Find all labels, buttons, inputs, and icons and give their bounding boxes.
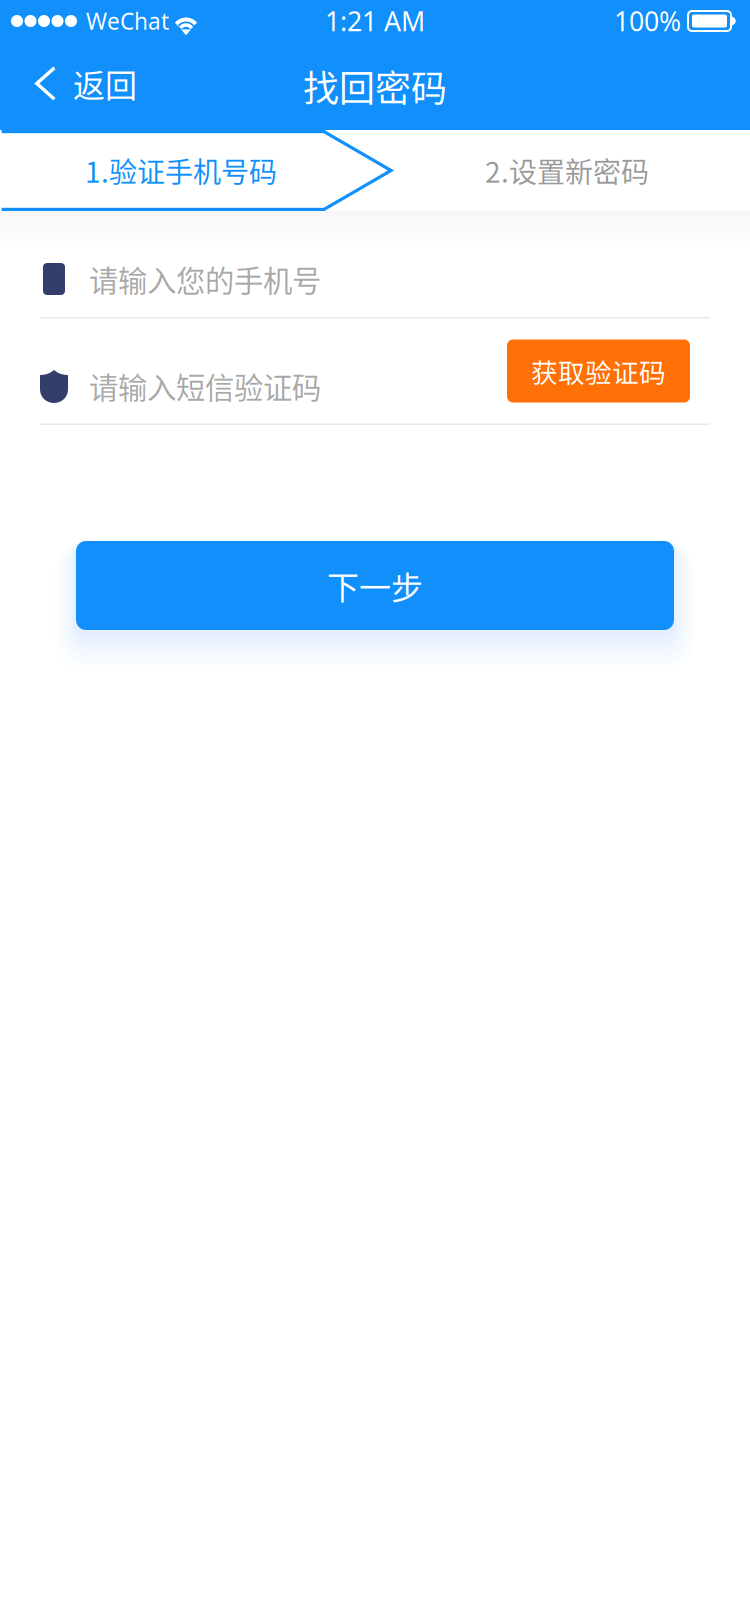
staticText: WeChat xyxy=(86,6,169,36)
button[interactable]: 下一步 xyxy=(76,541,674,630)
staticText: 1.验证手机号码 xyxy=(85,150,277,191)
button[interactable]: 返回 xyxy=(0,42,157,130)
staticText: 请输入您的手机号 xyxy=(89,258,321,300)
staticText: 下一步 xyxy=(327,562,423,609)
staticText: 请输入短信验证码 xyxy=(89,365,321,407)
staticText: 2.设置新密码 xyxy=(485,150,649,191)
button[interactable]: 获取验证码 xyxy=(507,339,690,402)
staticText: 1:21 AM xyxy=(325,3,425,39)
staticText: 获取验证码 xyxy=(531,352,666,390)
staticText: 找回密码 xyxy=(303,60,447,112)
staticText: 返回 xyxy=(73,60,137,107)
staticText: 100% xyxy=(614,3,681,39)
